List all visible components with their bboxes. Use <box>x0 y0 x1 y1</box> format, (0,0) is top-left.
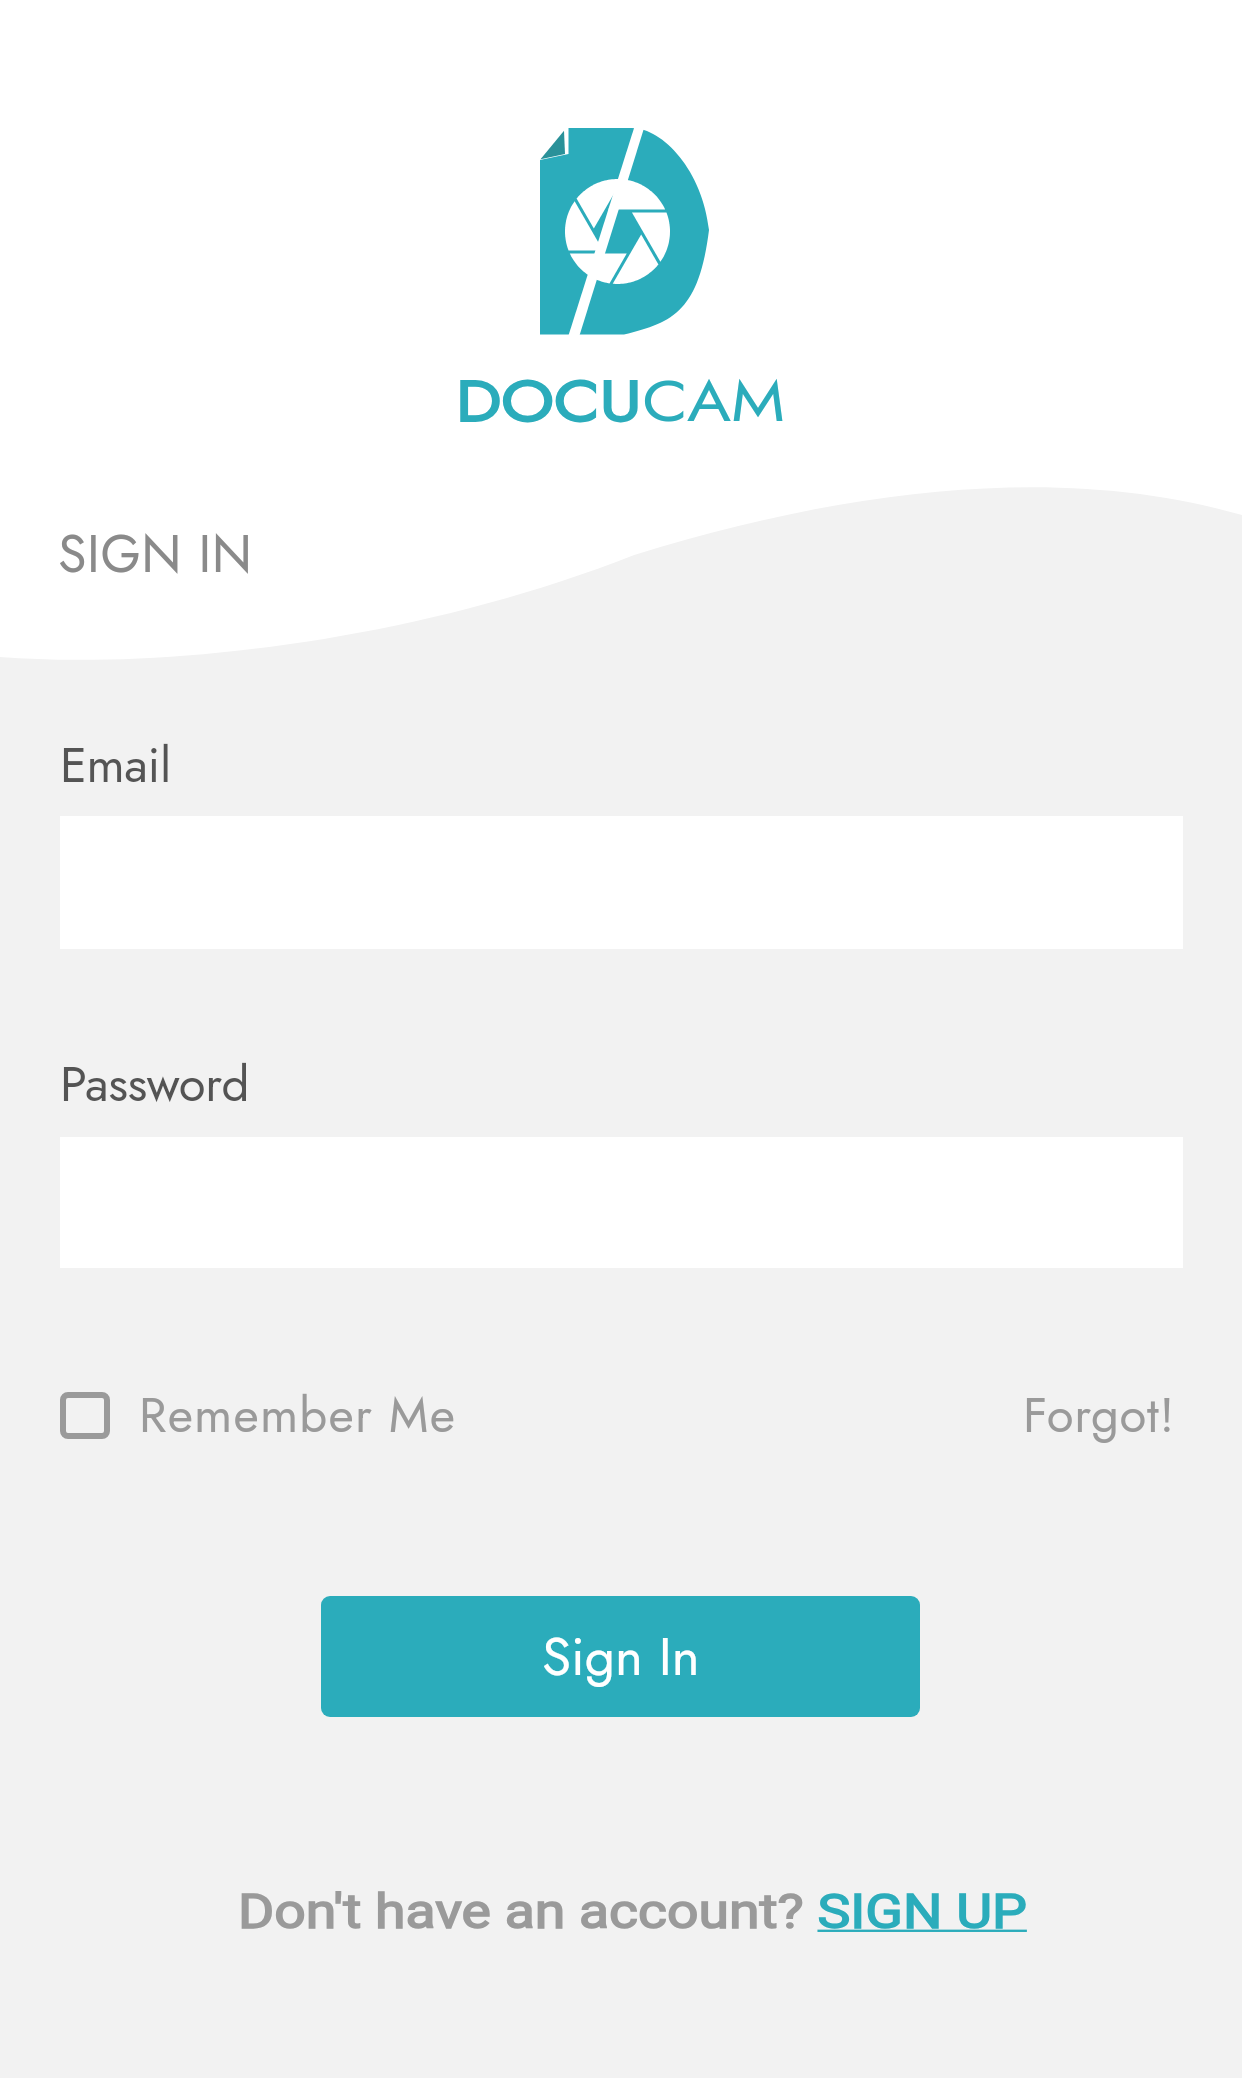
button[interactable]: Remember Me <box>60 1380 457 1451</box>
staticText: DOCU <box>456 359 642 443</box>
staticText: Remember Me <box>139 1380 457 1451</box>
other: DocuCam logo <box>539 126 709 336</box>
staticText: Don't have an account? <box>238 1883 817 1939</box>
staticText: Sign In <box>542 1618 700 1695</box>
button[interactable]: Sign In <box>321 1596 920 1717</box>
staticText: Password <box>60 1049 250 1120</box>
staticText: Email <box>60 730 171 801</box>
staticText: CAM <box>642 359 786 443</box>
staticText: SIGN IN <box>58 516 253 591</box>
button[interactable]: Forgot! <box>1023 1380 1175 1451</box>
button[interactable]: SIGN UP <box>817 1883 1027 1939</box>
